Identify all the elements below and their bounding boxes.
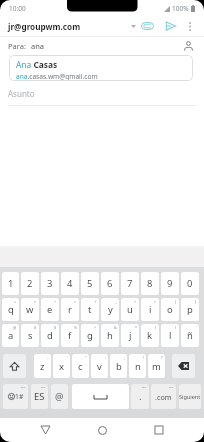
button[interactable]: &	[101, 324, 119, 347]
button[interactable]: =	[61, 298, 79, 321]
staticText: •••	[21, 385, 26, 390]
staticText: •••	[142, 385, 147, 390]
button[interactable]: •••	[31, 384, 48, 409]
staticText: &	[114, 325, 117, 330]
staticText: 7	[127, 277, 133, 290]
staticText: u	[127, 303, 133, 316]
staticText: %	[74, 325, 77, 330]
button[interactable]: 1	[2, 272, 19, 295]
staticText: 0	[187, 277, 193, 290]
staticText: .	[139, 390, 142, 403]
staticText: 8	[147, 277, 153, 290]
button[interactable]: Ana Casas	[9, 55, 193, 81]
staticText: /	[95, 299, 97, 304]
staticText: o	[167, 303, 173, 316]
staticText: s	[28, 329, 33, 342]
staticText: ñ	[187, 329, 193, 342]
button[interactable]: %	[61, 324, 79, 347]
button[interactable]: 5	[81, 272, 99, 295]
staticText: z	[40, 360, 45, 373]
staticText: •••	[169, 385, 174, 390]
staticText: 9	[167, 277, 173, 290]
button[interactable]: 6	[101, 272, 119, 295]
button[interactable]: -	[34, 354, 51, 378]
button[interactable]: *	[121, 324, 139, 347]
staticText: Asunto	[8, 88, 35, 99]
button[interactable]	[72, 384, 129, 409]
staticText: ;	[124, 355, 125, 360]
button[interactable]: More options	[182, 16, 198, 36]
staticText: n	[135, 360, 141, 373]
button[interactable]: 7	[121, 272, 139, 295]
button[interactable]: <	[121, 298, 139, 321]
button[interactable]: @	[51, 384, 68, 409]
staticText: *	[135, 325, 137, 330]
button[interactable]: 9	[161, 272, 179, 295]
button[interactable]	[172, 354, 195, 378]
staticText: ×	[34, 299, 37, 304]
button[interactable]: •••	[3, 384, 28, 409]
button[interactable]: ]	[181, 298, 199, 321]
staticText: )	[175, 325, 177, 330]
button[interactable]: 0	[181, 272, 199, 295]
staticText: a	[8, 329, 14, 342]
button[interactable]: 3	[41, 272, 59, 295]
button[interactable]: '	[53, 354, 70, 378]
button[interactable]: •••	[151, 384, 176, 409]
staticText: 100%	[172, 4, 189, 13]
staticText: Para:	[8, 41, 26, 51]
button[interactable]: •••	[131, 384, 149, 409]
staticText: +	[14, 299, 17, 304]
button[interactable]: Expand account	[126, 16, 141, 36]
staticText: 1#	[15, 392, 24, 401]
staticText: ]	[195, 299, 197, 304]
staticText: [	[175, 299, 177, 304]
button[interactable]: Open contacts	[180, 38, 196, 54]
button[interactable]: (	[141, 324, 159, 347]
staticText: e	[47, 303, 53, 316]
button[interactable]: [	[161, 298, 179, 321]
button[interactable]: $	[41, 324, 59, 347]
button[interactable]	[3, 354, 26, 378]
staticText: ÷	[54, 299, 57, 304]
staticText: Siguiente	[179, 393, 201, 400]
button[interactable]: ;	[110, 354, 127, 378]
button[interactable]: /	[81, 298, 99, 321]
staticText: Ana Casas	[16, 59, 58, 70]
button[interactable]: ×	[21, 298, 39, 321]
button[interactable]: )	[161, 324, 179, 347]
button[interactable]: Recent apps	[147, 418, 171, 442]
button[interactable]: Send	[161, 16, 180, 36]
button[interactable]: >	[141, 298, 159, 321]
button[interactable]: "	[72, 354, 89, 378]
staticText: "	[85, 355, 87, 360]
button[interactable]: !	[129, 354, 146, 378]
button[interactable]: 4	[61, 272, 79, 295]
staticText: 4	[67, 277, 73, 290]
button[interactable]: Siguiente	[179, 384, 201, 409]
button[interactable]: 8	[141, 272, 159, 295]
button[interactable]: Home	[90, 418, 114, 442]
button[interactable]: '	[181, 324, 199, 347]
button[interactable]: Back	[33, 418, 57, 442]
button[interactable]: #	[21, 324, 39, 347]
staticText: ES	[34, 390, 45, 403]
staticText: x	[59, 360, 64, 373]
staticText: i	[149, 303, 152, 316]
button[interactable]: :	[91, 354, 108, 378]
staticText: .com	[155, 392, 172, 402]
staticText: h	[107, 329, 113, 342]
button[interactable]: @	[2, 324, 19, 347]
staticText: <	[134, 299, 137, 304]
staticText: =	[74, 299, 77, 304]
button[interactable]: ?	[148, 354, 165, 378]
button[interactable]: Attach file	[138, 16, 157, 36]
staticText: y	[108, 303, 113, 316]
button[interactable]: +	[2, 298, 19, 321]
staticText: !	[143, 355, 144, 360]
staticText: g	[87, 329, 93, 342]
button[interactable]: _	[101, 298, 119, 321]
button[interactable]: 2	[21, 272, 39, 295]
button[interactable]: ÷	[41, 298, 59, 321]
button[interactable]: ^	[81, 324, 99, 347]
